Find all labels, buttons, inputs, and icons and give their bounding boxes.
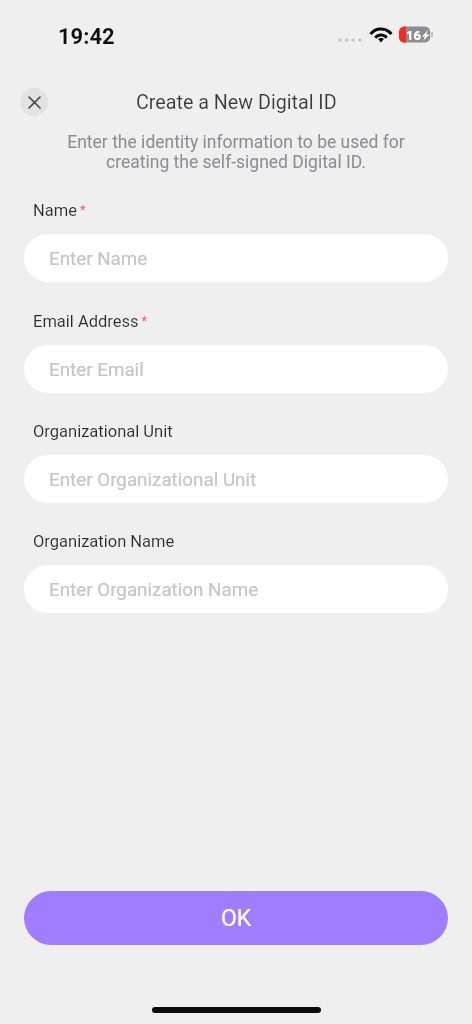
staticText: Organization Name [33,532,175,551]
staticText: Name * [33,201,86,220]
staticText: Enter Email [49,359,144,381]
staticText: Create a New Digital ID [136,91,337,114]
button[interactable]: Enter Email [24,345,448,393]
button[interactable]: Close [20,88,48,116]
button[interactable]: Enter Organizational Unit [24,455,448,503]
staticText: Enter Organization Name [49,579,259,601]
staticText: Organizational Unit [33,422,173,441]
staticText: Enter Name [49,248,148,270]
staticText: 19:42 [58,24,115,50]
button[interactable]: OK [24,891,448,945]
button[interactable]: Enter Organization Name [24,565,448,613]
staticText: Email Address * [33,312,148,331]
button[interactable]: Enter Name [24,234,448,282]
staticText: 16 [406,28,421,43]
staticText: OK [221,905,252,932]
staticText: Enter Organizational Unit [49,469,257,491]
staticText: Enter the identity information to be use… [55,132,417,172]
